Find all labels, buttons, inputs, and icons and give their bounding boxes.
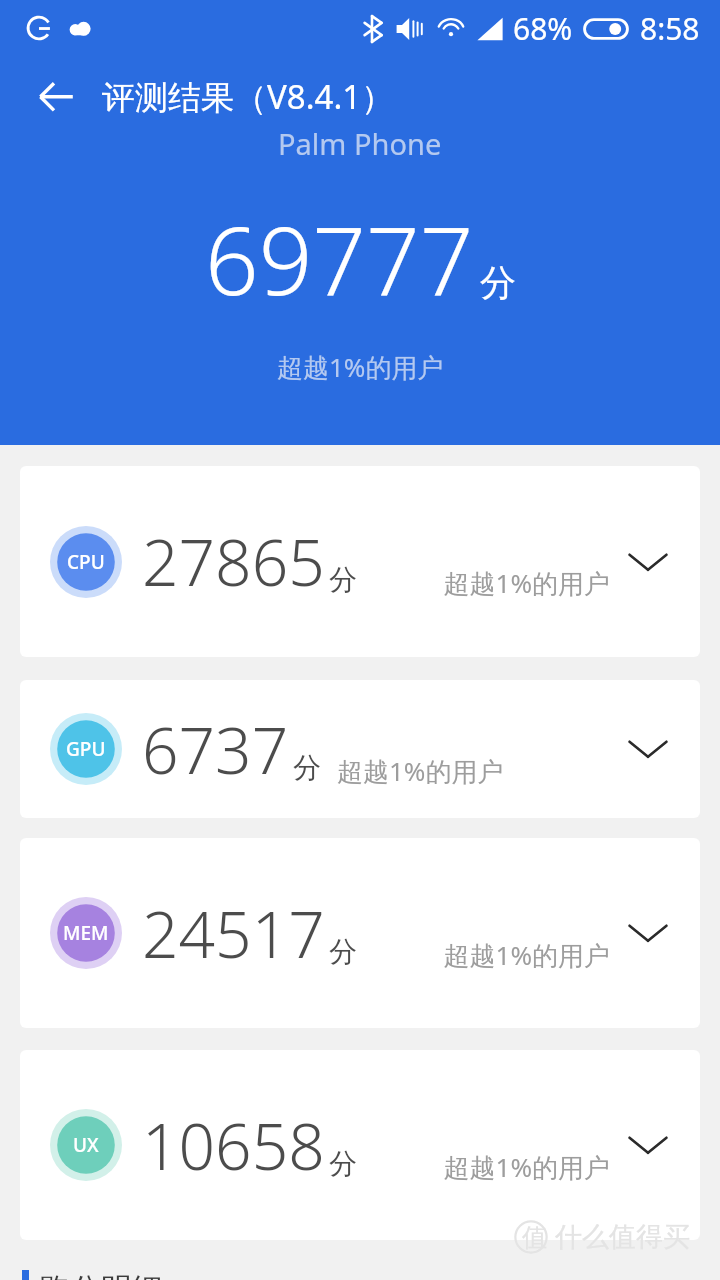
staticText: 评测结果（V8.4.1）: [102, 74, 395, 119]
staticText: 10658: [142, 1102, 325, 1189]
staticText: 分: [329, 1146, 357, 1181]
staticText: MEM: [63, 920, 109, 946]
button[interactable]: Back: [24, 64, 88, 128]
staticText: 超越1%的用户: [277, 349, 444, 385]
staticText: 24517: [142, 890, 325, 977]
staticText: 超越1%的用户: [373, 937, 610, 973]
staticText: Palm Phone: [278, 124, 442, 163]
staticText: 超越1%的用户: [373, 565, 610, 601]
staticText: 6737: [142, 706, 289, 793]
staticText: UX: [73, 1132, 99, 1158]
button[interactable]: Expand MEM details: [620, 905, 676, 961]
button[interactable]: UX: [20, 1050, 700, 1240]
staticText: 27865: [142, 518, 325, 605]
staticText: 超越1%的用户: [373, 1149, 610, 1185]
staticText: CPU: [67, 549, 105, 575]
button[interactable]: Expand UX details: [620, 1117, 676, 1173]
staticText: 69777: [205, 195, 474, 323]
staticText: 8:58: [640, 8, 700, 49]
button[interactable]: MEM: [20, 838, 700, 1028]
button[interactable]: Expand CPU details: [620, 534, 676, 590]
staticText: 超越1%的用户: [337, 753, 610, 789]
staticText: 分: [329, 562, 357, 597]
staticText: 分: [293, 750, 321, 785]
button[interactable]: Expand GPU details: [620, 721, 676, 777]
staticText: 什么值得买: [555, 1220, 690, 1254]
staticText: 值: [522, 1222, 547, 1253]
button[interactable]: CPU: [20, 466, 700, 657]
staticText: 分: [329, 934, 357, 969]
staticText: 分: [480, 260, 516, 305]
staticText: GPU: [66, 736, 106, 762]
button[interactable]: GPU: [20, 680, 700, 818]
staticText: 68%: [513, 8, 573, 49]
staticText: 跑分明细: [39, 1270, 163, 1280]
